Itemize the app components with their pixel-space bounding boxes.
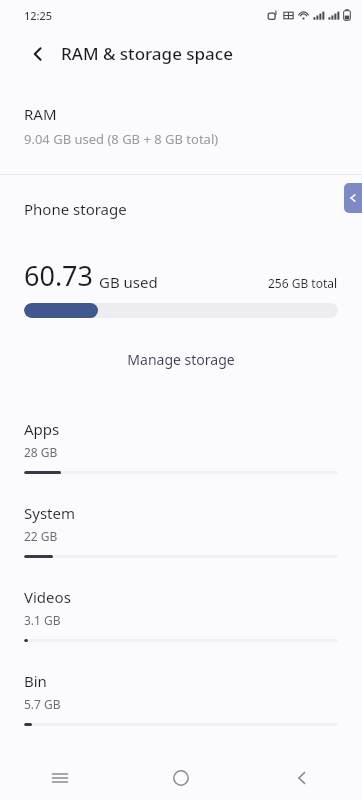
- button[interactable]: System: [0, 491, 362, 575]
- staticText: 60.73: [24, 257, 94, 294]
- staticText: 28 GB: [24, 444, 58, 460]
- staticText: Bin: [24, 671, 47, 691]
- staticText: Phone storage: [24, 199, 127, 219]
- button[interactable]: Videos: [0, 575, 362, 659]
- button[interactable]: Back: [24, 40, 52, 68]
- button[interactable]: Manage storage: [0, 344, 362, 375]
- staticText: Apps: [24, 419, 60, 439]
- button[interactable]: Bin: [0, 659, 362, 743]
- staticText: RAM: [24, 104, 57, 124]
- staticText: 12:25: [24, 8, 53, 23]
- button[interactable]: Open edge panel: [344, 183, 362, 213]
- staticText: 22 GB: [24, 528, 58, 544]
- staticText: Videos: [24, 587, 71, 607]
- staticText: 5.7 GB: [24, 696, 61, 712]
- staticText: RAM & storage space: [61, 42, 233, 65]
- button[interactable]: RAM: [0, 77, 362, 174]
- button[interactable]: Home: [120, 756, 241, 800]
- button[interactable]: Apps: [0, 407, 362, 491]
- button[interactable]: Back: [241, 756, 362, 800]
- staticText: Manage storage: [127, 350, 235, 369]
- staticText: System: [24, 503, 75, 523]
- staticText: 9.04 GB used (8 GB + 8 GB total): [24, 130, 219, 148]
- staticText: 3.1 GB: [24, 612, 61, 628]
- staticText: 256 GB total: [268, 275, 338, 291]
- button[interactable]: Recents: [0, 756, 120, 800]
- staticText: GB used: [99, 272, 158, 292]
